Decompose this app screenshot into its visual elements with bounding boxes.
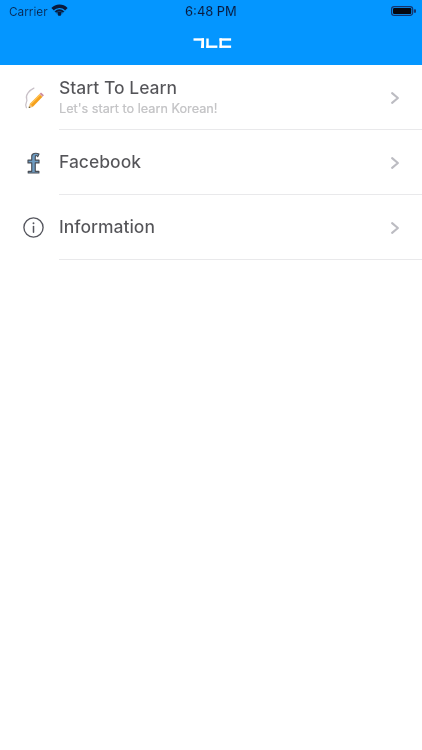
staticText: Let's start to learn Korean! [59,101,218,116]
button[interactable]: Information [0,195,422,260]
button[interactable]: Start To Learn [0,65,422,130]
button[interactable]: Facebook [0,130,422,195]
staticText: Carrier [9,5,48,19]
staticText: Facebook [59,151,141,172]
staticText: Start To Learn [59,77,178,98]
staticText: Information [59,216,155,237]
staticText: 6:48 PM [185,4,237,19]
